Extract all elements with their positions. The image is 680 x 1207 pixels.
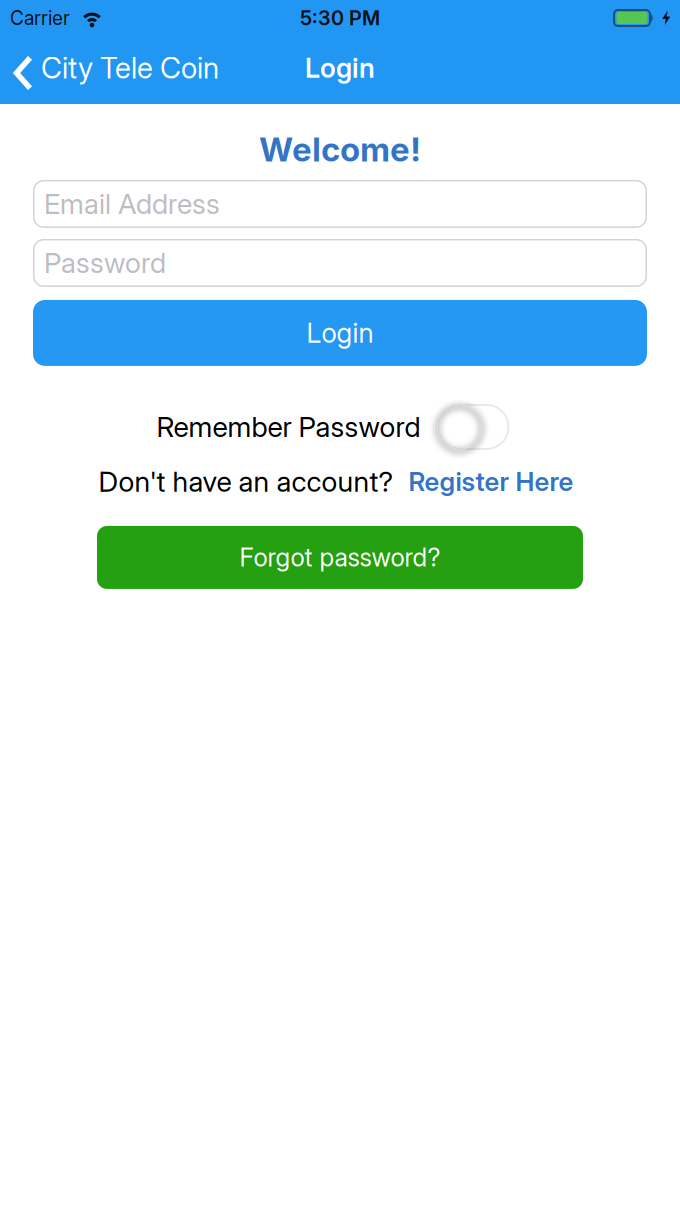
- button[interactable]: Register Here: [408, 466, 573, 497]
- button[interactable]: Forgot password?: [97, 526, 583, 589]
- button[interactable]: Login: [0, 300, 680, 366]
- staticText: Password: [44, 246, 166, 279]
- staticText: Login: [306, 317, 373, 349]
- staticText: Email Address: [44, 187, 220, 220]
- button[interactable]: Back to City Tele Coin: [0, 52, 219, 88]
- staticText: Register Here: [408, 466, 573, 497]
- button[interactable]: Password: [0, 239, 680, 287]
- button[interactable]: Email Address: [0, 180, 680, 228]
- staticText: Carrier: [10, 7, 70, 29]
- staticText: 5:30 PM: [300, 6, 380, 30]
- staticText: City Tele Coin: [41, 51, 219, 85]
- staticText: Login: [305, 52, 375, 84]
- staticText: Forgot password?: [239, 543, 440, 572]
- staticText: Don't have an account?: [98, 465, 393, 498]
- staticText: Remember Password: [156, 410, 420, 443]
- staticText: Welcome!: [259, 130, 421, 169]
- button[interactable]: Remember Password: [436, 404, 509, 450]
